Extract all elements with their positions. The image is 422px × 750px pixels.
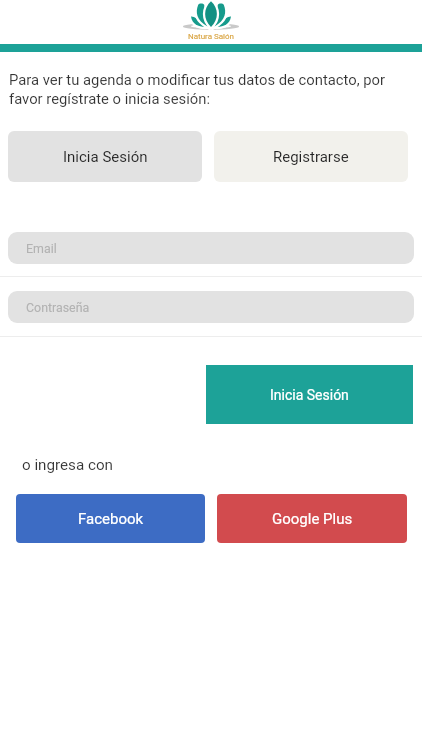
staticText: Natura Salón <box>188 32 235 41</box>
staticText: Para ver tu agenda o modificar tus datos… <box>9 71 389 108</box>
button[interactable]: Registrarse <box>214 131 408 182</box>
staticText: Contraseña <box>26 300 90 315</box>
staticText: Email <box>26 241 57 256</box>
button[interactable]: Contraseña <box>8 291 414 323</box>
button[interactable]: Facebook <box>16 494 205 543</box>
staticText: o ingresa con <box>22 456 113 474</box>
button[interactable]: Inicia Sesión <box>206 365 413 424</box>
button[interactable]: Email <box>8 232 414 264</box>
staticText: Facebook <box>78 510 144 528</box>
staticText: Registrarse <box>273 148 349 166</box>
button[interactable]: Inicia Sesión <box>8 131 202 182</box>
staticText: Inicia Sesión <box>63 148 148 166</box>
button[interactable]: Google Plus <box>217 494 407 543</box>
staticText: Inicia Sesión <box>270 387 349 403</box>
staticText: Google Plus <box>272 510 353 528</box>
